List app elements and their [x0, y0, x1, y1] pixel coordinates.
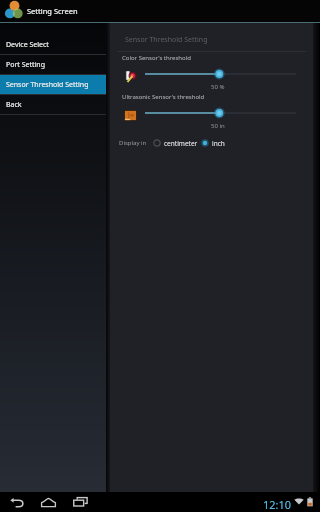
staticText: Port Setting [6, 60, 45, 70]
staticText: Color Sensor's threshold [122, 54, 191, 62]
staticText: Display in [119, 139, 147, 147]
button[interactable]: Back [7, 493, 26, 511]
staticText: Back [6, 100, 22, 110]
button[interactable]: Sensor Threshold Setting [0, 75, 106, 94]
button[interactable]: Threshold slider [140, 106, 301, 120]
staticText: 50 in [211, 122, 225, 130]
button[interactable]: Back [0, 95, 106, 114]
staticText: 12:10 [263, 497, 292, 512]
staticText: inch [212, 139, 225, 148]
staticText: 50 % [211, 83, 225, 91]
staticText: centimeter [164, 139, 198, 148]
button[interactable]: Home [39, 493, 58, 511]
button[interactable]: Threshold slider [140, 67, 301, 81]
button[interactable]: Recent apps [71, 493, 90, 511]
staticText: Sensor Threshold Setting [125, 35, 208, 45]
staticText: Device Select [6, 40, 49, 50]
button[interactable]: inch [199, 138, 226, 148]
staticText: Ultrasonic Sensor's threshold [122, 93, 205, 101]
staticText: Setting Screen [27, 6, 78, 16]
button[interactable]: Port Setting [0, 55, 106, 74]
staticText: Sensor Threshold Setting [6, 80, 89, 90]
button[interactable]: centimeter [151, 138, 199, 148]
button[interactable]: Device Select [0, 35, 106, 54]
